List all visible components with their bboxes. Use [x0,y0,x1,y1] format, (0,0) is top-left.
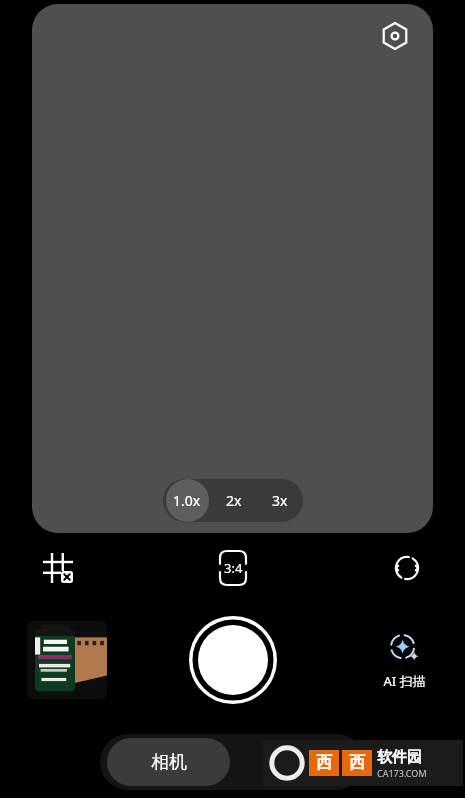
staticText: 相册 [279,751,315,774]
staticText: 2x [226,491,242,510]
button[interactable]: 1.0x [163,479,211,522]
staticText: 1.0x [173,491,201,510]
button[interactable]: 相册 [235,738,358,786]
button[interactable]: 3x [257,479,303,522]
button[interactable]: Settings [377,18,413,54]
button[interactable]: Switch camera [385,546,429,590]
button[interactable]: Shutter [189,616,277,704]
button[interactable]: 相机 [107,738,230,786]
staticText: AI 扫描 [383,672,426,690]
button[interactable]: Aspect ratio 3:4 [211,546,255,590]
staticText: 相机 [151,751,187,774]
button[interactable]: AI scan [365,631,443,690]
staticText: 3x [272,491,288,510]
staticText: 西 [316,753,332,773]
staticText: 3:4 [224,559,243,577]
staticText: CA173.COM [377,767,427,779]
staticText: 软件园 [377,748,422,767]
button[interactable]: 2x [211,479,257,522]
button[interactable]: Gallery [27,621,107,699]
staticText: 西 [349,753,365,773]
button[interactable]: Grid off [36,546,80,590]
